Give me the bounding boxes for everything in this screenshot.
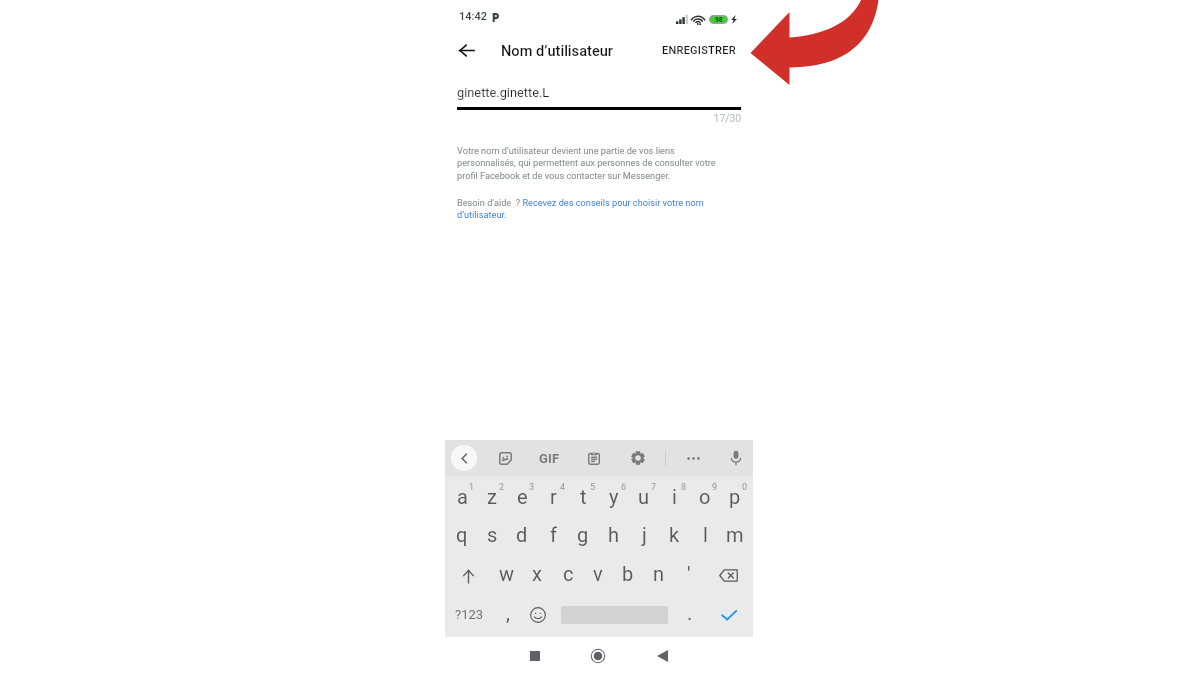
staticText: d [516,523,528,546]
button[interactable]: v [583,554,613,593]
button[interactable]: l [690,515,720,554]
button[interactable]: h [599,515,629,554]
staticText: 9 [712,482,718,493]
staticText: GIF [539,451,560,466]
button[interactable]: Plus [680,445,706,471]
staticText: p [729,485,741,508]
staticText: q [456,523,468,546]
staticText: 98 [715,16,723,24]
button[interactable]: Micro [723,445,749,471]
staticText: Nom d’utilisateur [501,42,613,59]
button[interactable]: Valider [704,595,753,634]
staticText: c [563,562,574,585]
button[interactable]: i [659,476,689,515]
button[interactable]: u [629,476,659,515]
staticText: e [517,485,528,508]
button[interactable]: Fermer le clavier [451,445,477,471]
button[interactable]: Emoji [523,595,553,634]
button[interactable]: Supprimer [704,556,753,595]
button[interactable]: Paramètres [625,445,651,471]
staticText: k [669,523,680,546]
button[interactable]: x [522,554,552,593]
staticText: 4 [560,482,566,493]
staticText: n [653,562,665,585]
staticText: b [622,562,634,585]
button[interactable]: Accueil [583,641,613,671]
button[interactable]: GIF [536,445,562,471]
button[interactable]: f [538,515,568,554]
staticText: ' [687,562,691,585]
button[interactable]: e [507,476,537,515]
button[interactable]: , [493,593,523,632]
button[interactable]: p [720,476,750,515]
staticText: 5 [590,482,596,493]
button[interactable]: ENREGISTRER [658,37,740,64]
button[interactable]: d [507,515,537,554]
button[interactable]: j [629,515,659,554]
staticText: . [687,601,693,624]
staticText: 2 [499,482,505,493]
button[interactable]: z [477,476,507,515]
button[interactable]: o [690,476,720,515]
button[interactable]: t [568,476,598,515]
staticText: h [608,523,620,546]
button[interactable]: n [644,554,674,593]
staticText: y [609,485,619,508]
staticText: ENREGISTRER [662,44,736,57]
staticText: Votre nom d’utilisateur devient une part… [457,145,726,181]
button[interactable]: ' [674,554,704,593]
staticText: l [703,523,708,546]
staticText: ginette.ginette.L [457,85,550,100]
button[interactable]: Presse-papiers [581,445,607,471]
button[interactable]: Majuscule [445,557,492,596]
staticText: z [487,485,497,508]
staticText: 14:42 [459,10,487,23]
staticText: v [593,562,603,585]
button[interactable]: Autocollants [492,445,518,471]
button[interactable]: Applications récentes [520,641,550,671]
button[interactable]: Besoin d’aide ? Recevez des conseils pou… [457,197,726,220]
staticText: 0 [742,482,748,493]
staticText: w [499,562,515,585]
button[interactable]: c [553,554,583,593]
staticText: 17/30 [457,112,741,124]
button[interactable]: m [720,515,750,554]
staticText: g [577,523,589,546]
button[interactable]: . [675,593,705,632]
staticText: 3 [529,482,535,493]
button[interactable]: Espace [553,593,684,632]
staticText: o [699,485,711,508]
staticText: ?123 [455,607,484,622]
staticText: 6 [621,482,627,493]
button[interactable]: a [447,476,477,515]
staticText: m [726,523,744,546]
staticText: 8 [681,482,687,493]
button[interactable]: b [613,554,643,593]
staticText: j [642,523,647,546]
staticText: , [506,601,510,624]
staticText: 1 [469,482,475,493]
staticText: 7 [651,482,657,493]
button[interactable]: s [477,515,507,554]
button[interactable]: g [568,515,598,554]
button[interactable]: y [599,476,629,515]
button[interactable]: r [538,476,568,515]
staticText: f [550,523,557,546]
button[interactable]: Retour [451,35,481,65]
staticText: x [532,562,542,585]
button[interactable]: w [492,554,522,593]
button[interactable]: q [447,515,477,554]
staticText: s [487,523,498,546]
button[interactable]: k [659,515,689,554]
staticText: a [457,485,468,508]
staticText: r [550,485,557,508]
button[interactable]: ?123 [445,593,492,632]
staticText: u [638,485,650,508]
button[interactable]: Retour [647,641,677,671]
staticText: t [580,485,587,508]
staticText: i [672,485,677,508]
